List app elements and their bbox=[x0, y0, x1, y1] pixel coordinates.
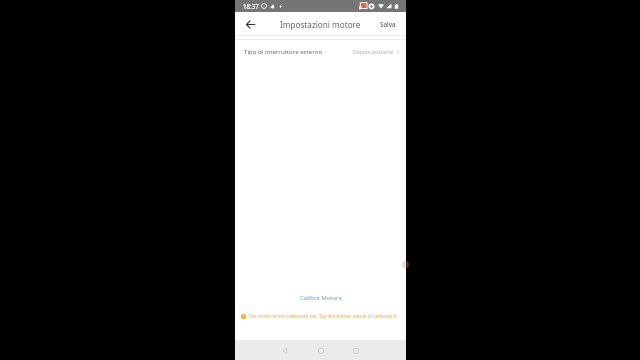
button[interactable]: Back bbox=[278, 344, 292, 358]
button[interactable]: Calibra Motore bbox=[290, 290, 352, 306]
button[interactable]: Tipo di interruttore esterno bbox=[235, 40, 406, 62]
staticText: Tipo di interruttore esterno bbox=[244, 47, 323, 55]
button[interactable]: Salva bbox=[370, 14, 406, 33]
staticText: Calibra Motore bbox=[300, 294, 342, 302]
button[interactable]: Recents bbox=[349, 344, 363, 358]
button[interactable]: Home bbox=[314, 344, 328, 358]
staticText: The motor is not calibrated yet. Tap the… bbox=[248, 313, 397, 319]
staticText: Doppio pulsante bbox=[353, 48, 394, 55]
staticText: Impostazioni motore bbox=[280, 19, 361, 30]
staticText: Salva bbox=[380, 20, 396, 29]
button[interactable]: Back bbox=[241, 15, 259, 33]
staticText: 18:37 bbox=[243, 2, 259, 10]
